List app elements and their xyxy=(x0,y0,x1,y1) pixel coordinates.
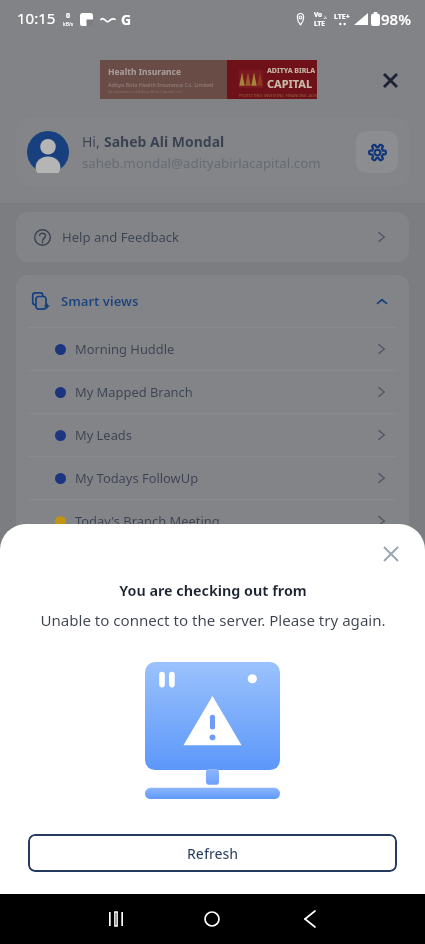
staticText: CAPITAL xyxy=(267,76,313,91)
staticText: Aditya Birla Health Insurance Co. Limite… xyxy=(108,81,214,88)
staticText: (A subsidiary of Aditya Birla Capital Lt… xyxy=(108,89,183,94)
staticText: Morning Huddle xyxy=(75,340,175,358)
staticText: 10:15 xyxy=(17,8,56,28)
staticText: Saheb Ali Mondal xyxy=(104,132,225,151)
button[interactable]: Home xyxy=(188,895,236,943)
button[interactable]: My Mapped Branch xyxy=(16,371,409,413)
button[interactable]: Morning Huddle xyxy=(16,328,409,370)
staticText: Vo xyxy=(314,10,323,19)
button[interactable]: Back xyxy=(286,895,334,943)
staticText: ADITYA BIRLA xyxy=(267,66,316,76)
staticText: kB/s xyxy=(63,21,74,28)
staticText: Smart views xyxy=(61,292,139,310)
staticText: Unable to connect to the server. Please … xyxy=(40,610,386,631)
staticText: saheb.mondal@adityabirlacapital.com xyxy=(82,154,321,172)
button[interactable]: Hi, xyxy=(16,118,409,186)
button[interactable]: Settings xyxy=(356,131,398,173)
button[interactable]: Close xyxy=(373,536,408,571)
button[interactable]: Smart views xyxy=(16,275,409,327)
button[interactable]: My Todays FollowUp xyxy=(16,457,409,499)
button[interactable]: Refresh xyxy=(28,834,397,872)
staticText: My Leads xyxy=(75,426,132,444)
staticText: Help and Feedback xyxy=(62,228,180,246)
staticText: 0 xyxy=(66,11,71,21)
button[interactable]: Close ad xyxy=(372,62,408,98)
button[interactable]: Today's Branch Meeting xyxy=(16,500,409,542)
staticText: LTE xyxy=(314,19,325,28)
staticText: My Mapped Branch xyxy=(75,383,193,401)
staticText: PROTECTING INVESTING FINANCING ADVISING xyxy=(239,93,317,98)
staticText: LTE+ xyxy=(334,12,350,22)
staticText: G xyxy=(121,10,132,29)
button[interactable]: My Leads xyxy=(16,414,409,456)
staticText: Today's Branch Meeting xyxy=(75,512,220,530)
staticText: You are checking out from xyxy=(119,581,307,600)
button[interactable]: Recents xyxy=(92,895,140,943)
staticText: Hi, xyxy=(82,132,104,151)
staticText: 98% xyxy=(381,9,411,29)
staticText: Health Insurance xyxy=(108,66,181,78)
staticText: My Todays FollowUp xyxy=(75,469,199,487)
staticText: Refresh xyxy=(187,844,239,863)
button[interactable]: Help and Feedback xyxy=(16,212,409,262)
